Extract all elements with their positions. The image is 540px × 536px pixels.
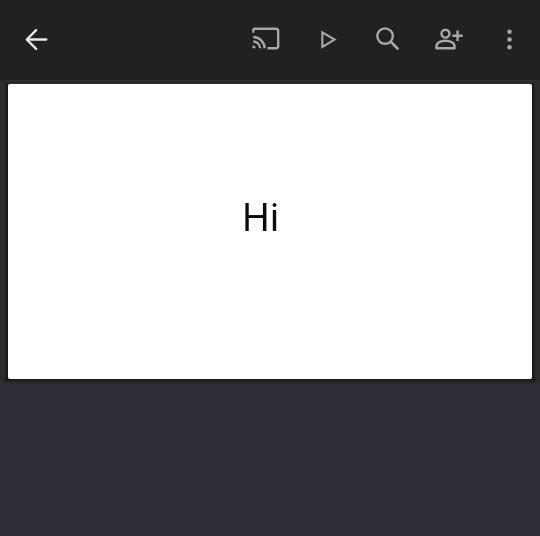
button[interactable]: More options bbox=[485, 15, 533, 63]
button[interactable]: Add person bbox=[424, 14, 472, 62]
staticText: Hi bbox=[242, 195, 280, 241]
button[interactable]: Play bbox=[304, 15, 352, 63]
button[interactable]: Cast bbox=[241, 14, 289, 62]
button[interactable]: Search bbox=[363, 14, 411, 62]
button[interactable]: Back bbox=[12, 15, 60, 63]
